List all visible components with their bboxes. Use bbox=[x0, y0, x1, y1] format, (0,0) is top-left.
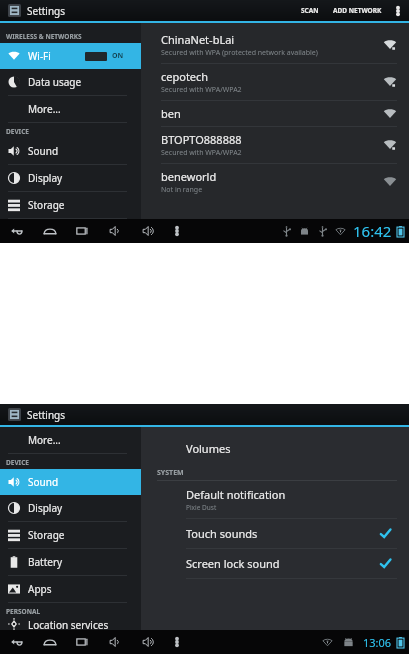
staticText: ben bbox=[161, 106, 181, 121]
staticText: ADD NETWORK bbox=[333, 6, 382, 15]
staticText: PERSONAL bbox=[6, 607, 41, 616]
button[interactable]: Volume down bbox=[99, 219, 132, 243]
staticText: Settings bbox=[27, 4, 66, 18]
button[interactable]: Volumes bbox=[141, 435, 409, 462]
button[interactable]: beneworld bbox=[141, 164, 409, 200]
staticText: DEVICE bbox=[6, 458, 29, 467]
staticText: beneworld bbox=[161, 169, 217, 184]
staticText: SCAN bbox=[301, 6, 319, 15]
button[interactable]: Data usage bbox=[0, 69, 141, 95]
button[interactable]: Menu bbox=[165, 630, 189, 654]
staticText: Location services bbox=[28, 618, 109, 630]
staticText: Wi-Fi bbox=[28, 49, 51, 63]
staticText: Storage bbox=[28, 198, 65, 212]
button[interactable]: cepotech bbox=[141, 64, 409, 100]
staticText: Battery bbox=[28, 555, 63, 569]
button[interactable]: Sound bbox=[0, 469, 141, 495]
staticText: Sound bbox=[28, 144, 59, 158]
staticText: More... bbox=[28, 433, 61, 447]
button[interactable]: ADD NETWORK bbox=[328, 3, 387, 18]
staticText: ON bbox=[112, 51, 124, 61]
staticText: cepotech bbox=[161, 69, 209, 84]
staticText: Touch sounds bbox=[186, 526, 380, 541]
button[interactable]: Home bbox=[33, 630, 66, 654]
staticText: Not in range bbox=[161, 185, 203, 195]
staticText: BTOPTO888888 bbox=[161, 132, 242, 147]
button[interactable]: Display bbox=[0, 495, 141, 521]
button[interactable]: ben bbox=[141, 101, 409, 126]
staticText: Secured with WPA/WPA2 bbox=[161, 148, 242, 158]
button[interactable]: SCAN bbox=[296, 3, 324, 18]
staticText: 16:42 bbox=[353, 221, 392, 241]
button[interactable]: Menu bbox=[165, 219, 189, 243]
button[interactable]: More... bbox=[0, 427, 141, 453]
button[interactable]: Touch sounds bbox=[141, 519, 409, 548]
button[interactable]: More... bbox=[0, 96, 141, 122]
button[interactable]: Battery bbox=[0, 549, 141, 575]
button[interactable]: More options bbox=[391, 0, 405, 21]
staticText: Display bbox=[28, 501, 63, 515]
button[interactable]: Back bbox=[0, 219, 33, 243]
staticText: Data usage bbox=[28, 75, 82, 89]
button[interactable]: Volume up bbox=[132, 630, 165, 654]
staticText: ChinaNet-bLai bbox=[161, 32, 235, 47]
staticText: DEVICE bbox=[6, 127, 29, 136]
staticText: Screen lock sound bbox=[186, 556, 380, 571]
staticText: Storage bbox=[28, 528, 65, 542]
button[interactable]: Location services bbox=[0, 618, 141, 630]
staticText: Display bbox=[28, 171, 63, 185]
staticText: WIRELESS & NETWORKS bbox=[6, 32, 82, 41]
button[interactable]: Storage bbox=[0, 522, 141, 548]
button[interactable]: Apps bbox=[0, 576, 141, 602]
button[interactable]: Default notification bbox=[141, 481, 409, 518]
button[interactable]: Home bbox=[33, 219, 66, 243]
button[interactable]: Sound bbox=[0, 138, 141, 164]
button[interactable]: Back bbox=[0, 630, 33, 654]
button[interactable]: Recent apps bbox=[66, 219, 99, 243]
button[interactable]: Screen lock sound bbox=[141, 549, 409, 578]
staticText: Volumes bbox=[186, 441, 231, 456]
button[interactable]: Wi-Fi bbox=[0, 43, 141, 69]
button[interactable]: ChinaNet-bLai bbox=[141, 27, 409, 63]
staticText: Settings bbox=[27, 408, 66, 422]
staticText: Default notification bbox=[186, 487, 286, 502]
button[interactable]: Volume down bbox=[99, 630, 132, 654]
button[interactable]: Display bbox=[0, 165, 141, 191]
staticText: Pixie Dust bbox=[186, 503, 217, 512]
staticText: Sound bbox=[28, 475, 59, 489]
staticText: More... bbox=[28, 102, 61, 116]
staticText: Apps bbox=[28, 582, 52, 596]
staticText: Secured with WPA (protected network avai… bbox=[161, 48, 318, 58]
button[interactable]: Volume up bbox=[132, 219, 165, 243]
button[interactable]: Storage bbox=[0, 192, 141, 218]
staticText: Secured with WPA/WPA2 bbox=[161, 85, 242, 95]
staticText: SYSTEM bbox=[157, 468, 184, 478]
staticText: 13:06 bbox=[363, 635, 392, 650]
button[interactable]: BTOPTO888888 bbox=[141, 127, 409, 163]
button[interactable]: Recent apps bbox=[66, 630, 99, 654]
